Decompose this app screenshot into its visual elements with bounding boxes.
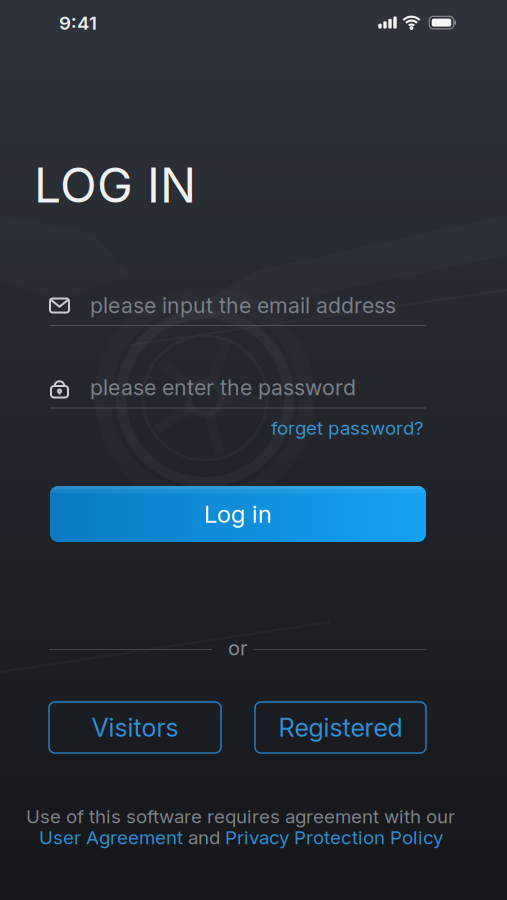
button[interactable]: Registered bbox=[255, 702, 426, 753]
staticText: Use of this software requires agreement … bbox=[26, 805, 455, 827]
button[interactable]: User Agreement bbox=[39, 826, 183, 848]
staticText: LOG IN bbox=[34, 157, 196, 213]
staticText: Registered bbox=[278, 713, 402, 742]
staticText: Log in bbox=[204, 500, 272, 528]
staticText: Privacy Protection Policy bbox=[225, 826, 443, 848]
staticText: or bbox=[228, 636, 247, 660]
staticText: please enter the password bbox=[90, 375, 356, 400]
staticText: and bbox=[183, 826, 225, 848]
button[interactable]: Privacy Protection Policy bbox=[225, 826, 443, 848]
button[interactable]: Log in bbox=[50, 486, 426, 542]
button[interactable]: forget password? bbox=[271, 417, 424, 439]
staticText: please input the email address bbox=[90, 293, 396, 318]
staticText: User Agreement bbox=[39, 826, 183, 848]
staticText: Visitors bbox=[91, 713, 178, 742]
staticText: 9:41 bbox=[59, 12, 97, 34]
button[interactable]: Visitors bbox=[49, 702, 221, 753]
staticText: forget password? bbox=[271, 417, 424, 439]
